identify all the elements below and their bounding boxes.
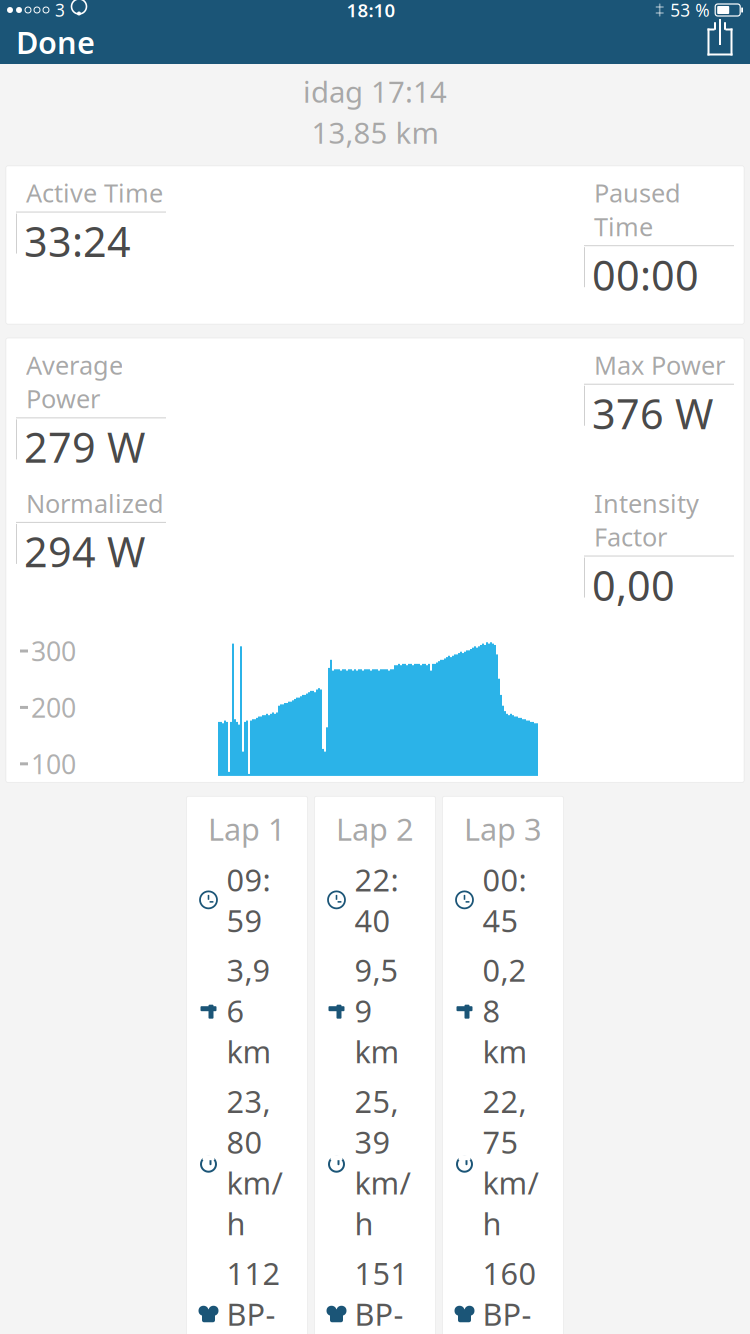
staticText: idag 17:14 (303, 72, 447, 111)
staticText: 09:59 (226, 859, 270, 940)
staticText: 0,28 km (482, 950, 527, 1072)
staticText: 25,39 km/h (354, 1081, 410, 1244)
staticText: 9,59 km (354, 950, 399, 1072)
staticText: 300 (31, 633, 76, 669)
staticText: Paused Time (594, 176, 681, 243)
staticText: 376 W (592, 386, 713, 441)
button[interactable]: Share (690, 19, 750, 65)
staticText: 0,00 (592, 557, 675, 612)
staticText: 3 (55, 0, 65, 21)
button[interactable]: Lap 3 (442, 796, 563, 1334)
staticText: Lap 3 (464, 808, 542, 849)
button[interactable]: Lap 1 (186, 796, 307, 1334)
staticText: 18:10 (347, 0, 396, 22)
staticText: Normalized (26, 486, 164, 520)
button[interactable]: Done (0, 14, 111, 70)
staticText: 294 W (24, 524, 145, 579)
staticText: Active Time (26, 176, 163, 209)
staticText: 22:40 (354, 859, 398, 940)
staticText: 151 BPM (354, 1253, 408, 1334)
staticText: 00:00 (592, 247, 699, 302)
staticText: 00:45 (482, 859, 526, 940)
staticText: Average Power (26, 348, 123, 415)
staticText: 53 % (670, 0, 709, 21)
staticText: 33:24 (24, 213, 131, 268)
staticText: 160 BPM (482, 1253, 536, 1334)
button[interactable]: Lap 2 (314, 796, 435, 1334)
staticText: 100 (31, 746, 76, 781)
staticText: 112 BPM (226, 1253, 280, 1334)
staticText: Done (16, 22, 95, 62)
staticText: 200 (31, 690, 76, 725)
staticText: 22,75 km/h (482, 1081, 538, 1244)
staticText: Lap 1 (208, 808, 286, 849)
staticText: 23,80 km/h (226, 1081, 282, 1244)
staticText: 279 W (24, 419, 145, 474)
staticText: Lap 2 (336, 808, 414, 849)
staticText: 3,96 km (226, 950, 271, 1072)
staticText: Max Power (594, 348, 725, 382)
staticText: 13,85 km (311, 113, 438, 152)
staticText: Intensity Factor (594, 486, 699, 553)
